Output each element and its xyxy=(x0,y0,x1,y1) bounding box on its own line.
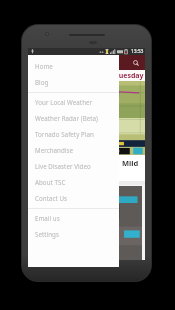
button[interactable]: Search xyxy=(130,57,141,68)
staticText: Tuesday xyxy=(115,71,144,81)
button[interactable] xyxy=(28,81,145,155)
staticText: Merchandise xyxy=(35,146,74,154)
staticText: Home xyxy=(35,62,53,70)
button[interactable]: Blog xyxy=(28,74,119,90)
staticText: Live Disaster Video xyxy=(35,162,91,170)
staticText: Email us xyxy=(35,214,60,222)
button[interactable]: Weather Radar (Beta) xyxy=(28,110,119,126)
staticText: About TSC xyxy=(35,178,66,186)
staticText: Weather Radar (Beta) xyxy=(35,114,98,122)
button[interactable]: About TSC xyxy=(28,174,119,190)
button[interactable] xyxy=(28,185,145,260)
button[interactable]: Tornado Safety Plan xyxy=(28,126,119,142)
button[interactable]: Home xyxy=(28,58,119,74)
staticText: Your Local Weather xyxy=(35,98,93,106)
button[interactable]: Your Local Weather xyxy=(28,94,119,110)
button[interactable]: Contact Us xyxy=(28,190,119,206)
staticText: Mild xyxy=(122,158,139,168)
button[interactable]: Live Disaster Video xyxy=(28,158,119,174)
staticText: Contact Us xyxy=(35,194,67,202)
button[interactable]: Merchandise xyxy=(28,142,119,158)
staticText: Tornado Safety Plan xyxy=(35,130,94,138)
button[interactable]: Settings xyxy=(28,226,119,242)
staticText: Blog xyxy=(35,78,49,86)
staticText: 13:53 xyxy=(131,48,144,55)
button[interactable]: Email us xyxy=(28,210,119,226)
staticText: Settings xyxy=(35,230,59,238)
